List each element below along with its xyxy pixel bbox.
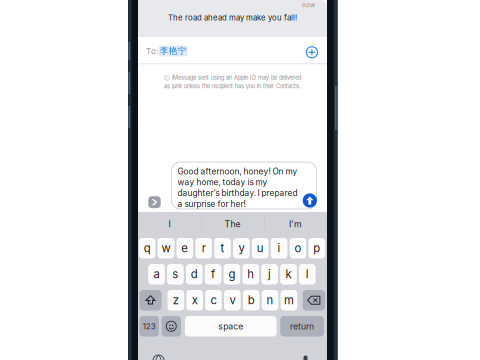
- staticText: b: [248, 293, 255, 307]
- staticText: a: [153, 267, 159, 281]
- button[interactable]: The: [201, 212, 264, 236]
- staticText: 李艳宁: [160, 45, 187, 56]
- staticText: c: [210, 293, 216, 307]
- staticText: h: [247, 267, 254, 281]
- button[interactable]: 123: [139, 316, 159, 336]
- staticText: a surprise for her!: [177, 199, 245, 209]
- button[interactable]: j: [261, 264, 278, 284]
- button[interactable]: t: [214, 238, 231, 258]
- button[interactable]: s: [167, 264, 184, 284]
- staticText: t: [220, 241, 224, 255]
- button[interactable]: I: [138, 212, 201, 236]
- staticText: x: [192, 293, 198, 307]
- button[interactable]: c: [205, 290, 222, 310]
- button[interactable]: Dictation: [299, 354, 312, 360]
- staticText: j: [268, 267, 271, 281]
- staticText: w: [161, 241, 170, 255]
- staticText: k: [285, 267, 291, 281]
- staticText: now: [302, 1, 315, 9]
- staticText: I'm: [289, 219, 302, 229]
- button[interactable]: v: [224, 290, 241, 310]
- button[interactable]: p: [308, 238, 325, 258]
- button[interactable]: m: [281, 290, 297, 310]
- button[interactable]: i: [271, 238, 287, 258]
- staticText: q: [144, 241, 151, 255]
- staticText: space: [218, 321, 243, 331]
- staticText: v: [229, 293, 235, 307]
- button[interactable]: a: [148, 264, 165, 284]
- staticText: daughter's birthday. I prepared: [177, 188, 297, 198]
- staticText: The: [224, 219, 240, 229]
- staticText: To:: [146, 46, 158, 56]
- button[interactable]: Send: [303, 193, 317, 208]
- staticText: I: [168, 219, 170, 229]
- button[interactable]: n: [262, 290, 278, 310]
- staticText: n: [267, 293, 274, 307]
- staticText: z: [173, 293, 179, 307]
- button[interactable]: z: [167, 290, 184, 310]
- staticText: way home, today is my: [177, 177, 267, 187]
- staticText: e: [181, 241, 188, 255]
- staticText: 123: [143, 321, 156, 331]
- button[interactable]: q: [139, 238, 155, 258]
- staticText: m: [284, 293, 294, 307]
- staticText: l: [306, 267, 309, 281]
- staticText: f: [211, 267, 215, 281]
- button[interactable]: Apps: [148, 196, 161, 208]
- button[interactable]: return: [280, 316, 324, 336]
- button[interactable]: u: [252, 238, 268, 258]
- button[interactable]: e: [176, 238, 193, 258]
- staticText: y: [238, 241, 244, 255]
- button[interactable]: Shift: [139, 290, 161, 310]
- button[interactable]: w: [158, 238, 174, 258]
- staticText: i: [278, 241, 281, 255]
- staticText: g: [228, 267, 235, 281]
- button[interactable]: l: [299, 264, 316, 284]
- button[interactable]: g: [224, 264, 240, 284]
- button[interactable]: h: [242, 264, 259, 284]
- button[interactable]: o: [290, 238, 306, 258]
- staticText: r: [202, 241, 206, 255]
- button[interactable]: space: [185, 316, 276, 336]
- button[interactable]: x: [186, 290, 203, 310]
- button[interactable]: Emoji: [161, 316, 181, 336]
- staticText: p: [313, 241, 320, 255]
- staticText: ⓘ iMessage sent using an Apple ID may be…: [164, 74, 301, 81]
- button[interactable]: Add contact: [304, 45, 319, 60]
- button[interactable]: Delete: [303, 290, 325, 310]
- button[interactable]: d: [186, 264, 202, 284]
- button[interactable]: y: [233, 238, 250, 258]
- staticText: s: [172, 267, 178, 281]
- staticText: as junk unless the recipient has you in …: [164, 83, 301, 90]
- staticText: return: [290, 321, 314, 331]
- button[interactable]: r: [195, 238, 212, 258]
- staticText: Good afternoon, honey! On my: [177, 166, 297, 176]
- staticText: d: [191, 267, 198, 281]
- button[interactable]: b: [243, 290, 259, 310]
- staticText: The road ahead may make you fall!: [168, 13, 297, 22]
- staticText: u: [257, 241, 264, 255]
- staticText: o: [294, 241, 301, 255]
- button[interactable]: k: [280, 264, 297, 284]
- button[interactable]: Next keyboard: [152, 354, 165, 360]
- button[interactable]: I'm: [264, 212, 327, 236]
- button[interactable]: f: [205, 264, 221, 284]
